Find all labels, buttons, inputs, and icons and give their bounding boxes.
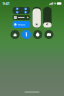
button[interactable]: Cellular Data	[22, 7, 29, 10]
button[interactable]: Flashlight	[22, 30, 31, 39]
button[interactable]: Brightness	[32, 7, 41, 27]
button[interactable]: Wi-Fi	[13, 11, 21, 14]
button[interactable]: Rotation Lock	[11, 30, 20, 39]
button[interactable]: Volume	[43, 7, 52, 27]
button[interactable]: Focus	[13, 21, 30, 28]
staticText: 9:41	[3, 1, 10, 6]
staticText: Focus	[18, 23, 25, 26]
button[interactable]: Bluetooth	[22, 11, 29, 14]
button[interactable]: Timer	[33, 30, 42, 39]
button[interactable]: Now Playing	[13, 15, 30, 20]
button[interactable]: Airplane Mode	[13, 7, 21, 10]
button[interactable]: Camera	[44, 30, 53, 39]
